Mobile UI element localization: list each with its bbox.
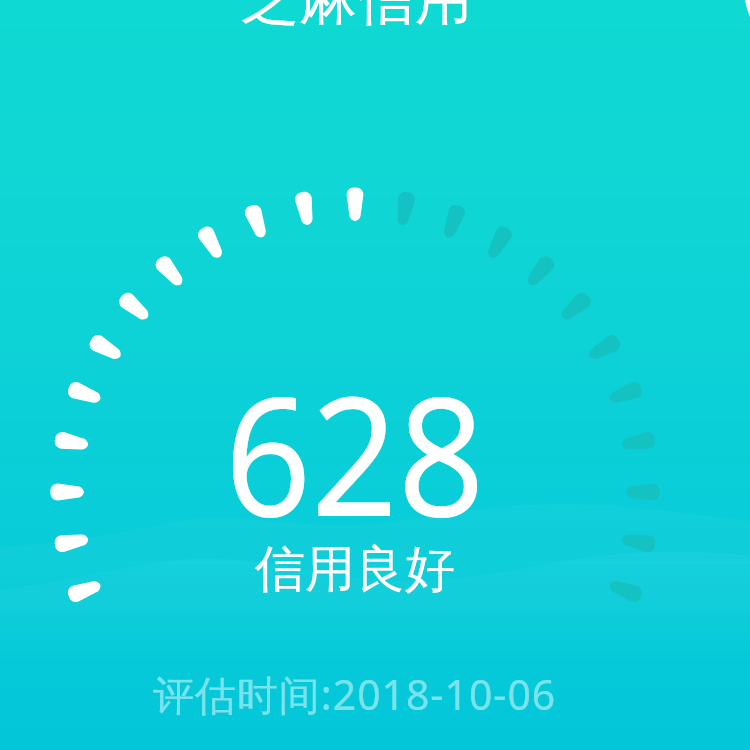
staticText: 评估时间:2018-10-06 xyxy=(153,666,557,722)
button[interactable]: 芝麻信用 xyxy=(241,0,473,35)
staticText: 信用良好 xyxy=(255,538,455,601)
button[interactable]: 芝麻信用分 628 信用良好 xyxy=(185,170,525,610)
button[interactable]: More xyxy=(736,0,750,22)
staticText: 628 xyxy=(225,340,485,565)
